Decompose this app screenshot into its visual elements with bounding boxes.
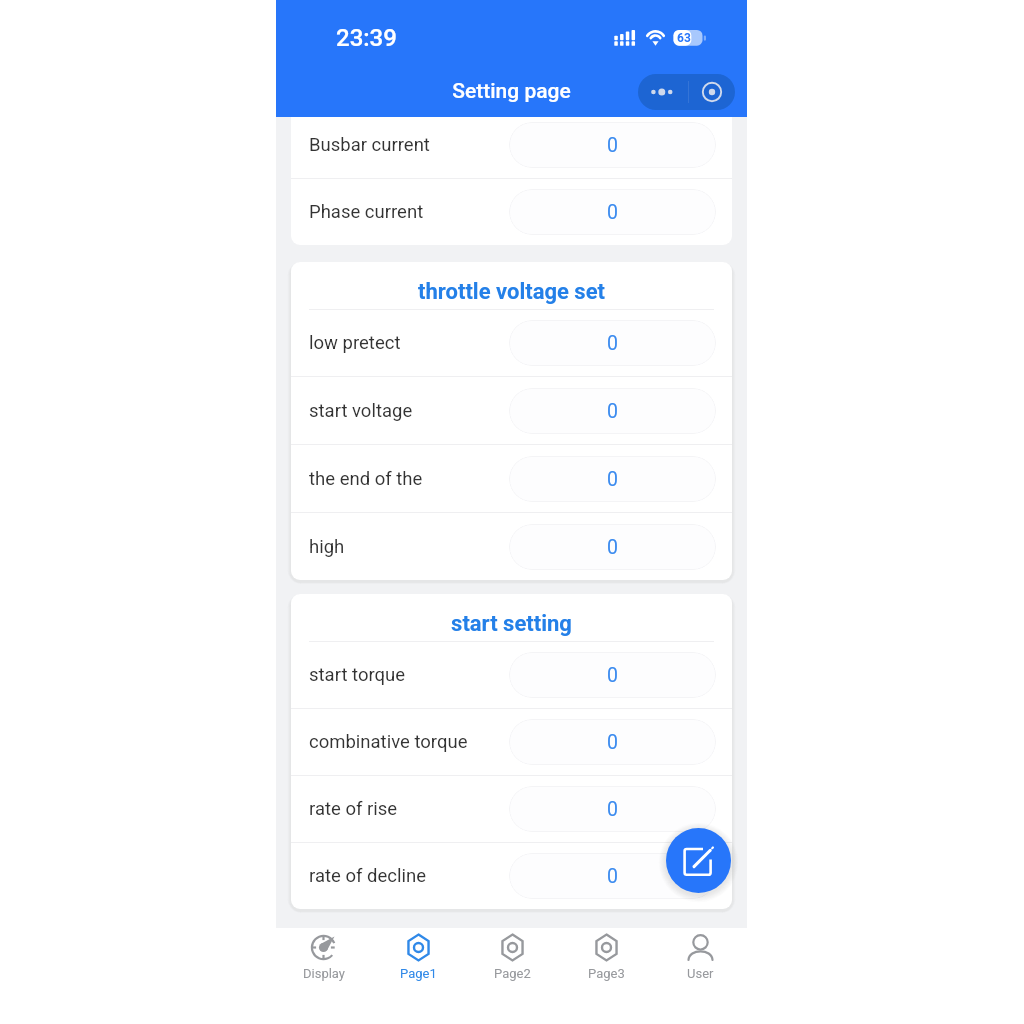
staticText: Setting page [276,79,747,104]
button[interactable]: Page1 [371,928,465,1024]
staticText: the end of the [309,468,423,490]
staticText: 0 [607,201,618,224]
button[interactable]: Busbar current [291,117,732,178]
staticText: 0 [607,865,618,888]
button[interactable]: combinative torque [291,709,732,775]
staticText: 23:39 [336,24,397,52]
staticText: Page2 [494,966,531,981]
staticText: high [309,536,345,558]
staticText: Page3 [588,966,625,981]
staticText: throttle voltage set [418,279,605,305]
staticText: 0 [607,468,618,491]
button[interactable]: low pretect [291,310,732,376]
button[interactable]: Close mini program [689,74,735,110]
staticText: rate of rise [309,798,398,820]
button[interactable]: Page2 [465,928,559,1024]
staticText: start voltage [309,400,413,422]
staticText: low pretect [309,332,401,354]
staticText: start torque [309,664,406,686]
staticText: 0 [607,400,618,423]
staticText: 0 [607,798,618,821]
button[interactable]: rate of decline [291,843,732,909]
staticText: 0 [607,731,618,754]
button[interactable]: start voltage [291,377,732,444]
staticText: 0 [607,332,618,355]
button[interactable]: More options [638,74,688,110]
staticText: 63 [677,31,691,45]
button[interactable]: rate of rise [291,776,732,842]
button[interactable]: high [291,513,732,580]
staticText: 0 [607,134,618,157]
button[interactable]: Phase current [291,179,732,245]
staticText: rate of decline [309,865,426,887]
staticText: 0 [607,536,618,559]
button[interactable]: Display [276,928,371,1024]
button[interactable]: User [653,928,747,1024]
staticText: Display [303,966,345,981]
staticText: 0 [607,664,618,687]
button[interactable]: start torque [291,642,732,708]
staticText: Busbar current [309,134,430,156]
staticText: Page1 [400,966,437,981]
button[interactable]: More options [638,74,735,110]
staticText: combinative torque [309,731,468,753]
button[interactable]: Edit [666,828,731,893]
staticText: Phase current [309,201,424,223]
staticText: User [687,966,714,981]
staticText: start setting [451,611,572,637]
button[interactable]: Page3 [559,928,653,1024]
button[interactable]: the end of the [291,445,732,512]
